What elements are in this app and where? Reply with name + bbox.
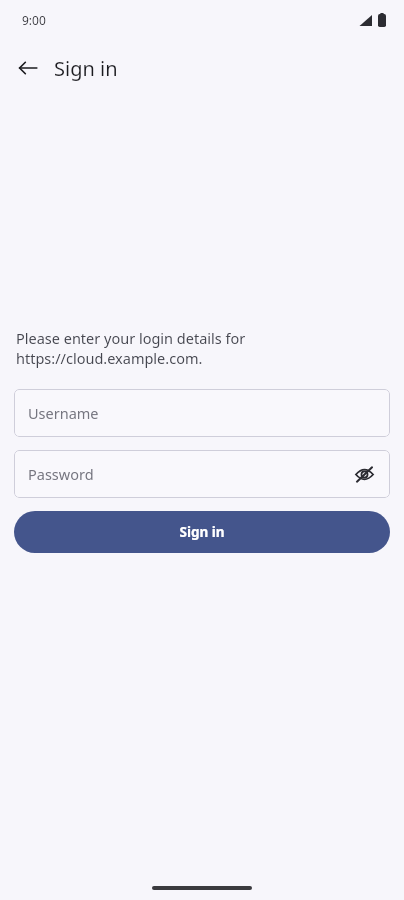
staticText: Password	[28, 464, 94, 484]
button[interactable]: Back	[6, 46, 50, 90]
staticText: 9:00	[22, 12, 46, 28]
staticText: Please enter your login details for http…	[16, 328, 246, 369]
staticText: Username	[28, 403, 99, 423]
staticText: Sign in	[54, 55, 118, 82]
button[interactable]: Show password	[344, 454, 384, 494]
button[interactable]: Username	[14, 389, 390, 437]
button[interactable]: Sign in	[14, 511, 390, 553]
staticText: Sign in	[179, 523, 225, 541]
button[interactable]: Password	[14, 450, 390, 498]
